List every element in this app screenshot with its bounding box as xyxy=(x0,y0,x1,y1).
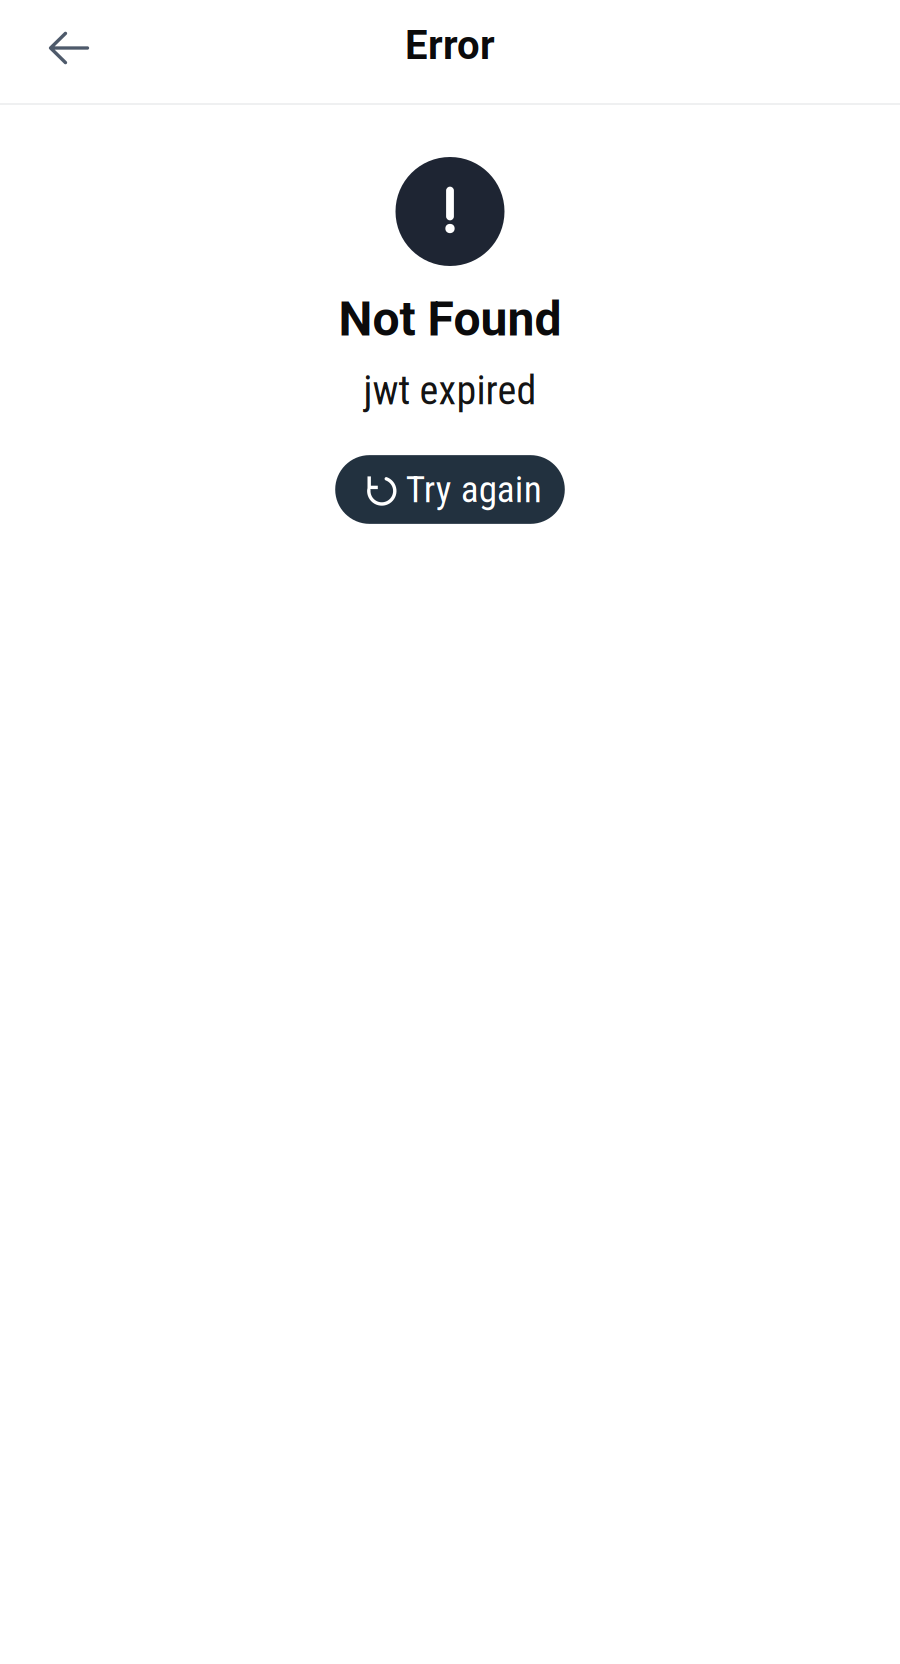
staticText: Error xyxy=(405,22,495,69)
staticText: jwt expired xyxy=(363,367,536,414)
button[interactable]: Try again xyxy=(335,455,565,524)
button[interactable]: Back xyxy=(37,16,101,80)
staticText: Try again xyxy=(406,468,542,511)
staticText: Not Found xyxy=(338,291,561,347)
